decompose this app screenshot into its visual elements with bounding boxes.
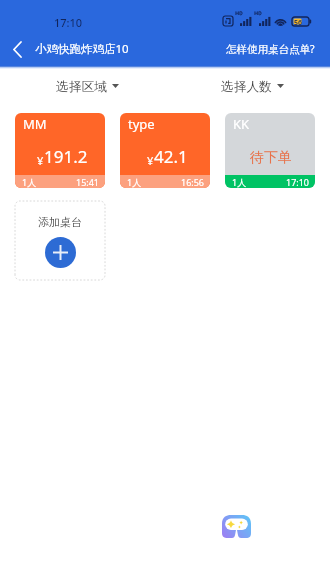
staticText: ¥ bbox=[147, 153, 154, 168]
button[interactable]: 选择区域 bbox=[56, 79, 119, 93]
button[interactable]: 选择人数 bbox=[221, 79, 284, 93]
staticText: 怎样使用桌台点单? bbox=[226, 42, 315, 56]
staticText: ¥ bbox=[37, 153, 44, 168]
staticText: 17:10 bbox=[54, 15, 83, 30]
staticText: 17:10 bbox=[286, 176, 310, 188]
staticText: KK bbox=[233, 115, 250, 133]
button[interactable]: type bbox=[120, 113, 210, 188]
staticText: 42.1 bbox=[154, 145, 188, 168]
button[interactable]: Back bbox=[0, 32, 33, 66]
staticText: type bbox=[128, 115, 155, 133]
button[interactable]: 添加桌台 bbox=[15, 201, 105, 280]
staticText: 添加桌台 bbox=[38, 215, 82, 229]
button[interactable]: Games bbox=[222, 515, 251, 538]
staticText: 选择人数 bbox=[221, 79, 272, 93]
staticText: 1人 bbox=[127, 176, 142, 188]
staticText: 1人 bbox=[232, 176, 247, 188]
staticText: MM bbox=[23, 115, 47, 133]
staticText: 小鸡快跑炸鸡店10 bbox=[35, 41, 129, 57]
staticText: 56 bbox=[294, 18, 303, 28]
staticText: 191.2 bbox=[44, 145, 88, 168]
button[interactable]: KK bbox=[225, 113, 315, 188]
staticText: 1人 bbox=[22, 176, 37, 188]
button[interactable]: 怎样使用桌台点单? bbox=[220, 38, 330, 60]
staticText: 选择区域 bbox=[56, 79, 107, 93]
staticText: 15:41 bbox=[76, 176, 100, 188]
staticText: 待下单 bbox=[250, 149, 292, 167]
button[interactable]: MM bbox=[15, 113, 105, 188]
staticText: 16:56 bbox=[181, 176, 205, 188]
